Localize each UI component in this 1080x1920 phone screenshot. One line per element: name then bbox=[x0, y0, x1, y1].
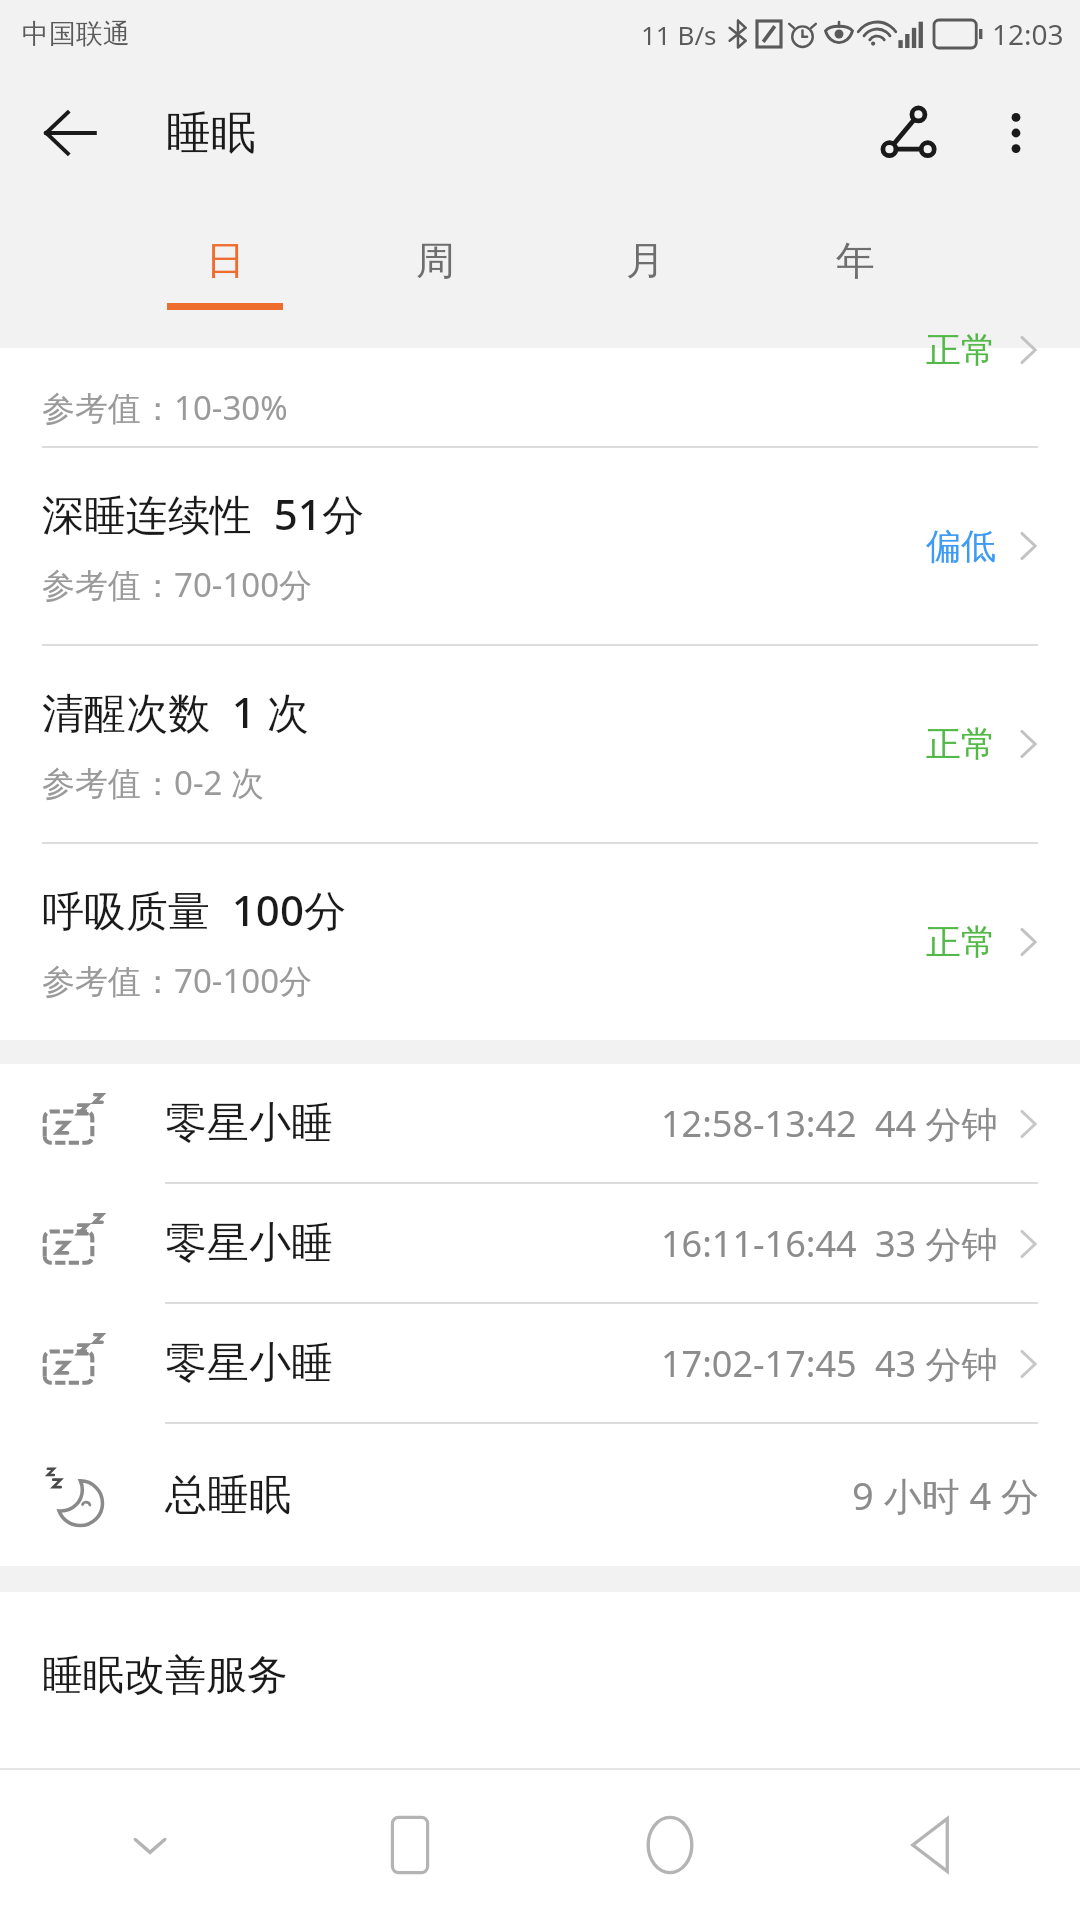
staticText: 零星小睡 bbox=[165, 1097, 333, 1150]
button[interactable]: 呼吸质量 100分 bbox=[0, 844, 1080, 1040]
button[interactable]: 深睡连续性 51分 bbox=[0, 448, 1080, 644]
button[interactable]: 零星小睡 bbox=[0, 1064, 1080, 1182]
button[interactable]: Recent apps bbox=[280, 1770, 540, 1920]
staticText: 17:02-17:45 bbox=[661, 1339, 857, 1388]
button[interactable]: Hide navigation bar bbox=[20, 1770, 280, 1920]
staticText: 日 bbox=[206, 236, 245, 285]
staticText: 正常 bbox=[926, 722, 996, 766]
button[interactable]: 日 bbox=[120, 198, 330, 348]
button[interactable]: 清醒次数 1 次 bbox=[0, 646, 1080, 842]
staticText: 偏低 bbox=[926, 524, 996, 568]
staticText: 睡眠改善服务 bbox=[42, 1650, 288, 1702]
staticText: 深睡连续性 51分 bbox=[42, 485, 364, 542]
staticText: 参考值：10-30% bbox=[42, 385, 288, 430]
staticText: 43 分钟 bbox=[875, 1339, 998, 1388]
button[interactable]: More options bbox=[976, 93, 1056, 173]
button[interactable]: 零星小睡 bbox=[0, 1304, 1080, 1422]
staticText: 周 bbox=[416, 236, 455, 285]
button[interactable]: 周 bbox=[330, 198, 540, 348]
staticText: 12:58-13:42 bbox=[661, 1099, 857, 1148]
button[interactable]: Share bbox=[864, 89, 952, 177]
button[interactable]: Back bbox=[28, 91, 112, 175]
staticText: 参考值：70-100分 bbox=[42, 958, 313, 1003]
staticText: 睡眠 bbox=[166, 105, 256, 162]
staticText: 44 分钟 bbox=[875, 1099, 998, 1148]
staticText: 零星小睡 bbox=[165, 1217, 333, 1270]
button[interactable]: 月 bbox=[540, 198, 750, 348]
button[interactable]: Back bbox=[800, 1770, 1060, 1920]
button[interactable]: 年 bbox=[750, 198, 960, 348]
button[interactable]: 睡眠改善服务 bbox=[0, 1592, 1080, 1702]
button[interactable]: Home bbox=[540, 1770, 800, 1920]
button[interactable]: 参考值：10-30% bbox=[0, 348, 1080, 446]
staticText: 总睡眠 bbox=[165, 1469, 291, 1522]
button[interactable]: 零星小睡 bbox=[0, 1184, 1080, 1302]
staticText: 正常 bbox=[926, 920, 996, 964]
staticText: 16:11-16:44 bbox=[661, 1219, 857, 1268]
staticText: 清醒次数 1 次 bbox=[42, 683, 309, 740]
staticText: 月 bbox=[626, 236, 665, 285]
staticText: 中国联通 bbox=[22, 17, 130, 51]
staticText: 33 分钟 bbox=[875, 1219, 998, 1268]
staticText: 正常 bbox=[926, 328, 996, 372]
staticText: 参考值：0-2 次 bbox=[42, 760, 264, 805]
staticText: 呼吸质量 100分 bbox=[42, 881, 346, 938]
staticText: 年 bbox=[836, 236, 875, 285]
staticText: 12:03 bbox=[992, 15, 1064, 53]
staticText: 11 B/s bbox=[641, 17, 717, 52]
staticText: 零星小睡 bbox=[165, 1337, 333, 1390]
staticText: 参考值：70-100分 bbox=[42, 562, 313, 607]
staticText: 9 小时 4 分 bbox=[852, 1469, 1040, 1521]
button[interactable]: 总睡眠 bbox=[0, 1424, 1080, 1566]
